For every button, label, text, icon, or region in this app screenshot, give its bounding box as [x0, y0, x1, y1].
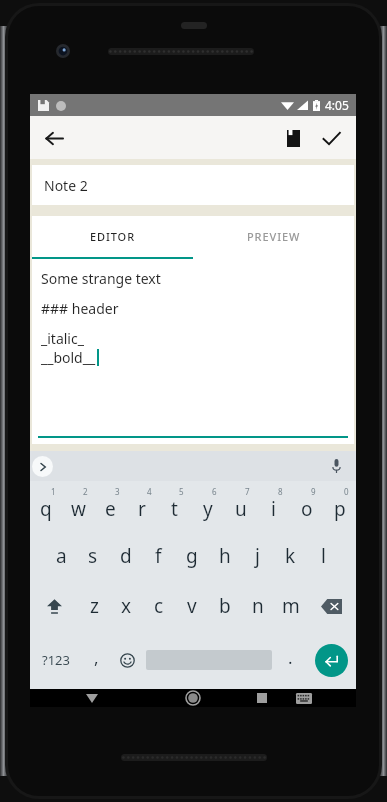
staticText: k	[285, 543, 296, 569]
staticText: _italic_	[41, 329, 84, 348]
button[interactable]: ?123	[30, 631, 81, 689]
staticText: t	[171, 496, 178, 522]
button[interactable]: Back	[78, 689, 106, 707]
staticText: j	[255, 543, 260, 569]
button[interactable]: m	[274, 581, 307, 631]
button[interactable]: n	[241, 581, 274, 631]
button[interactable]: Switch keyboard	[290, 689, 318, 707]
button[interactable]: k	[274, 531, 307, 581]
staticText: g	[186, 543, 198, 569]
button[interactable]: Notebook	[274, 119, 312, 157]
button[interactable]: 0	[323, 481, 356, 531]
staticText: 4:05	[325, 97, 349, 113]
button[interactable]: Emoji	[112, 631, 143, 689]
button[interactable]: Recents	[248, 689, 276, 707]
button[interactable]: j	[241, 531, 274, 581]
button[interactable]: 3	[94, 481, 126, 531]
button[interactable]: Enter	[315, 644, 348, 677]
staticText: __bold__	[41, 348, 96, 367]
staticText: l	[321, 543, 326, 569]
button[interactable]: Back	[36, 120, 72, 156]
button[interactable]: Note 2	[32, 165, 354, 205]
button[interactable]: b	[208, 581, 241, 631]
button[interactable]: c	[142, 581, 175, 631]
staticText: v	[187, 593, 197, 619]
button[interactable]: f	[142, 531, 175, 581]
staticText: x	[121, 593, 132, 619]
staticText: 3	[115, 486, 120, 497]
button[interactable]: l	[307, 531, 340, 581]
staticText: ### header	[41, 299, 119, 318]
button[interactable]: Home	[179, 689, 207, 707]
staticText: p	[334, 496, 346, 522]
button[interactable]: 2	[62, 481, 94, 531]
button[interactable]: Shift	[30, 581, 78, 631]
staticText: 9	[311, 486, 316, 497]
button[interactable]: z	[78, 581, 110, 631]
button[interactable]: EDITOR	[32, 216, 193, 257]
staticText: d	[120, 543, 132, 569]
staticText: o	[301, 496, 313, 522]
button[interactable]: x	[110, 581, 142, 631]
button[interactable]: a	[45, 531, 77, 581]
staticText: e	[105, 496, 116, 522]
staticText: 2	[83, 486, 88, 497]
staticText: h	[219, 543, 231, 569]
button[interactable]: d	[109, 531, 142, 581]
staticText: ?123	[42, 651, 70, 669]
button[interactable]: Backspace	[307, 581, 356, 631]
staticText: a	[56, 543, 67, 569]
button[interactable]: 7	[224, 481, 257, 531]
staticText: 7	[245, 486, 250, 497]
button[interactable]: ,	[81, 631, 112, 689]
staticText: f	[155, 543, 162, 569]
staticText: PREVIEW	[247, 229, 301, 244]
button[interactable]: 5	[158, 481, 191, 531]
button[interactable]: 9	[290, 481, 323, 531]
staticText: w	[71, 496, 86, 522]
staticText: ,	[94, 646, 99, 669]
button[interactable]: Save	[312, 119, 350, 157]
button[interactable]: PREVIEW	[193, 216, 354, 257]
button[interactable]: s	[77, 531, 109, 581]
staticText: n	[252, 593, 264, 619]
staticText: u	[235, 496, 247, 522]
staticText: 0	[344, 486, 349, 497]
staticText: EDITOR	[90, 229, 135, 244]
staticText: 8	[278, 486, 283, 497]
button[interactable]: Expand suggestions	[32, 456, 53, 477]
button[interactable]: 6	[191, 481, 224, 531]
staticText: z	[90, 593, 99, 619]
button[interactable]: .	[275, 631, 306, 689]
staticText: .	[288, 646, 293, 669]
staticText: m	[282, 593, 300, 619]
staticText: c	[154, 593, 164, 619]
staticText: y	[203, 496, 213, 522]
button[interactable]: 4	[126, 481, 158, 531]
staticText: r	[138, 496, 146, 522]
staticText: 1	[51, 486, 56, 497]
staticText: i	[271, 496, 276, 522]
button[interactable]: 8	[257, 481, 290, 531]
staticText: Note 2	[44, 176, 88, 195]
staticText: 5	[179, 486, 184, 497]
staticText: Some strange text	[41, 269, 161, 288]
staticText: q	[40, 496, 52, 522]
button[interactable]: 1	[30, 481, 62, 531]
button[interactable]: h	[208, 531, 241, 581]
staticText: 4	[147, 486, 152, 497]
staticText: b	[219, 593, 231, 619]
staticText: s	[88, 543, 98, 569]
button[interactable]: g	[175, 531, 208, 581]
button[interactable]: v	[175, 581, 208, 631]
staticText: 6	[212, 486, 217, 497]
button[interactable]: Voice input	[326, 456, 346, 476]
